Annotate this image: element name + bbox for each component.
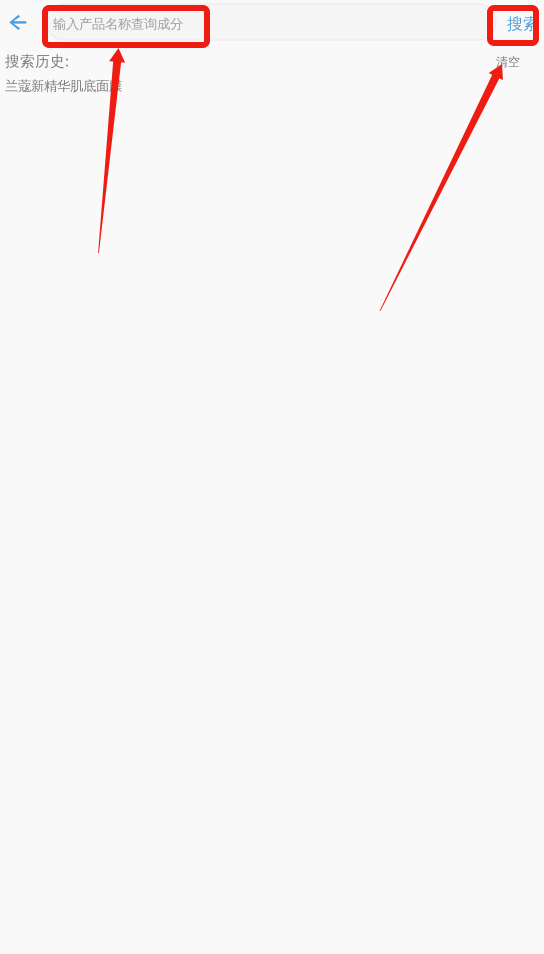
staticText: 清空	[496, 55, 520, 69]
button[interactable]: 兰蔻新精华肌底面膜	[5, 77, 135, 95]
button[interactable]: 搜索	[500, 5, 544, 43]
staticText: 搜索	[507, 14, 539, 34]
staticText: 兰蔻新精华肌底面膜	[5, 78, 122, 94]
staticText: 搜索历史:	[5, 51, 69, 70]
staticText: 输入产品名称查询成分	[53, 16, 183, 32]
button[interactable]: Back	[0, 10, 42, 54]
button[interactable]: 输入产品名称查询成分	[46, 4, 496, 40]
button[interactable]: 清空	[486, 50, 530, 74]
